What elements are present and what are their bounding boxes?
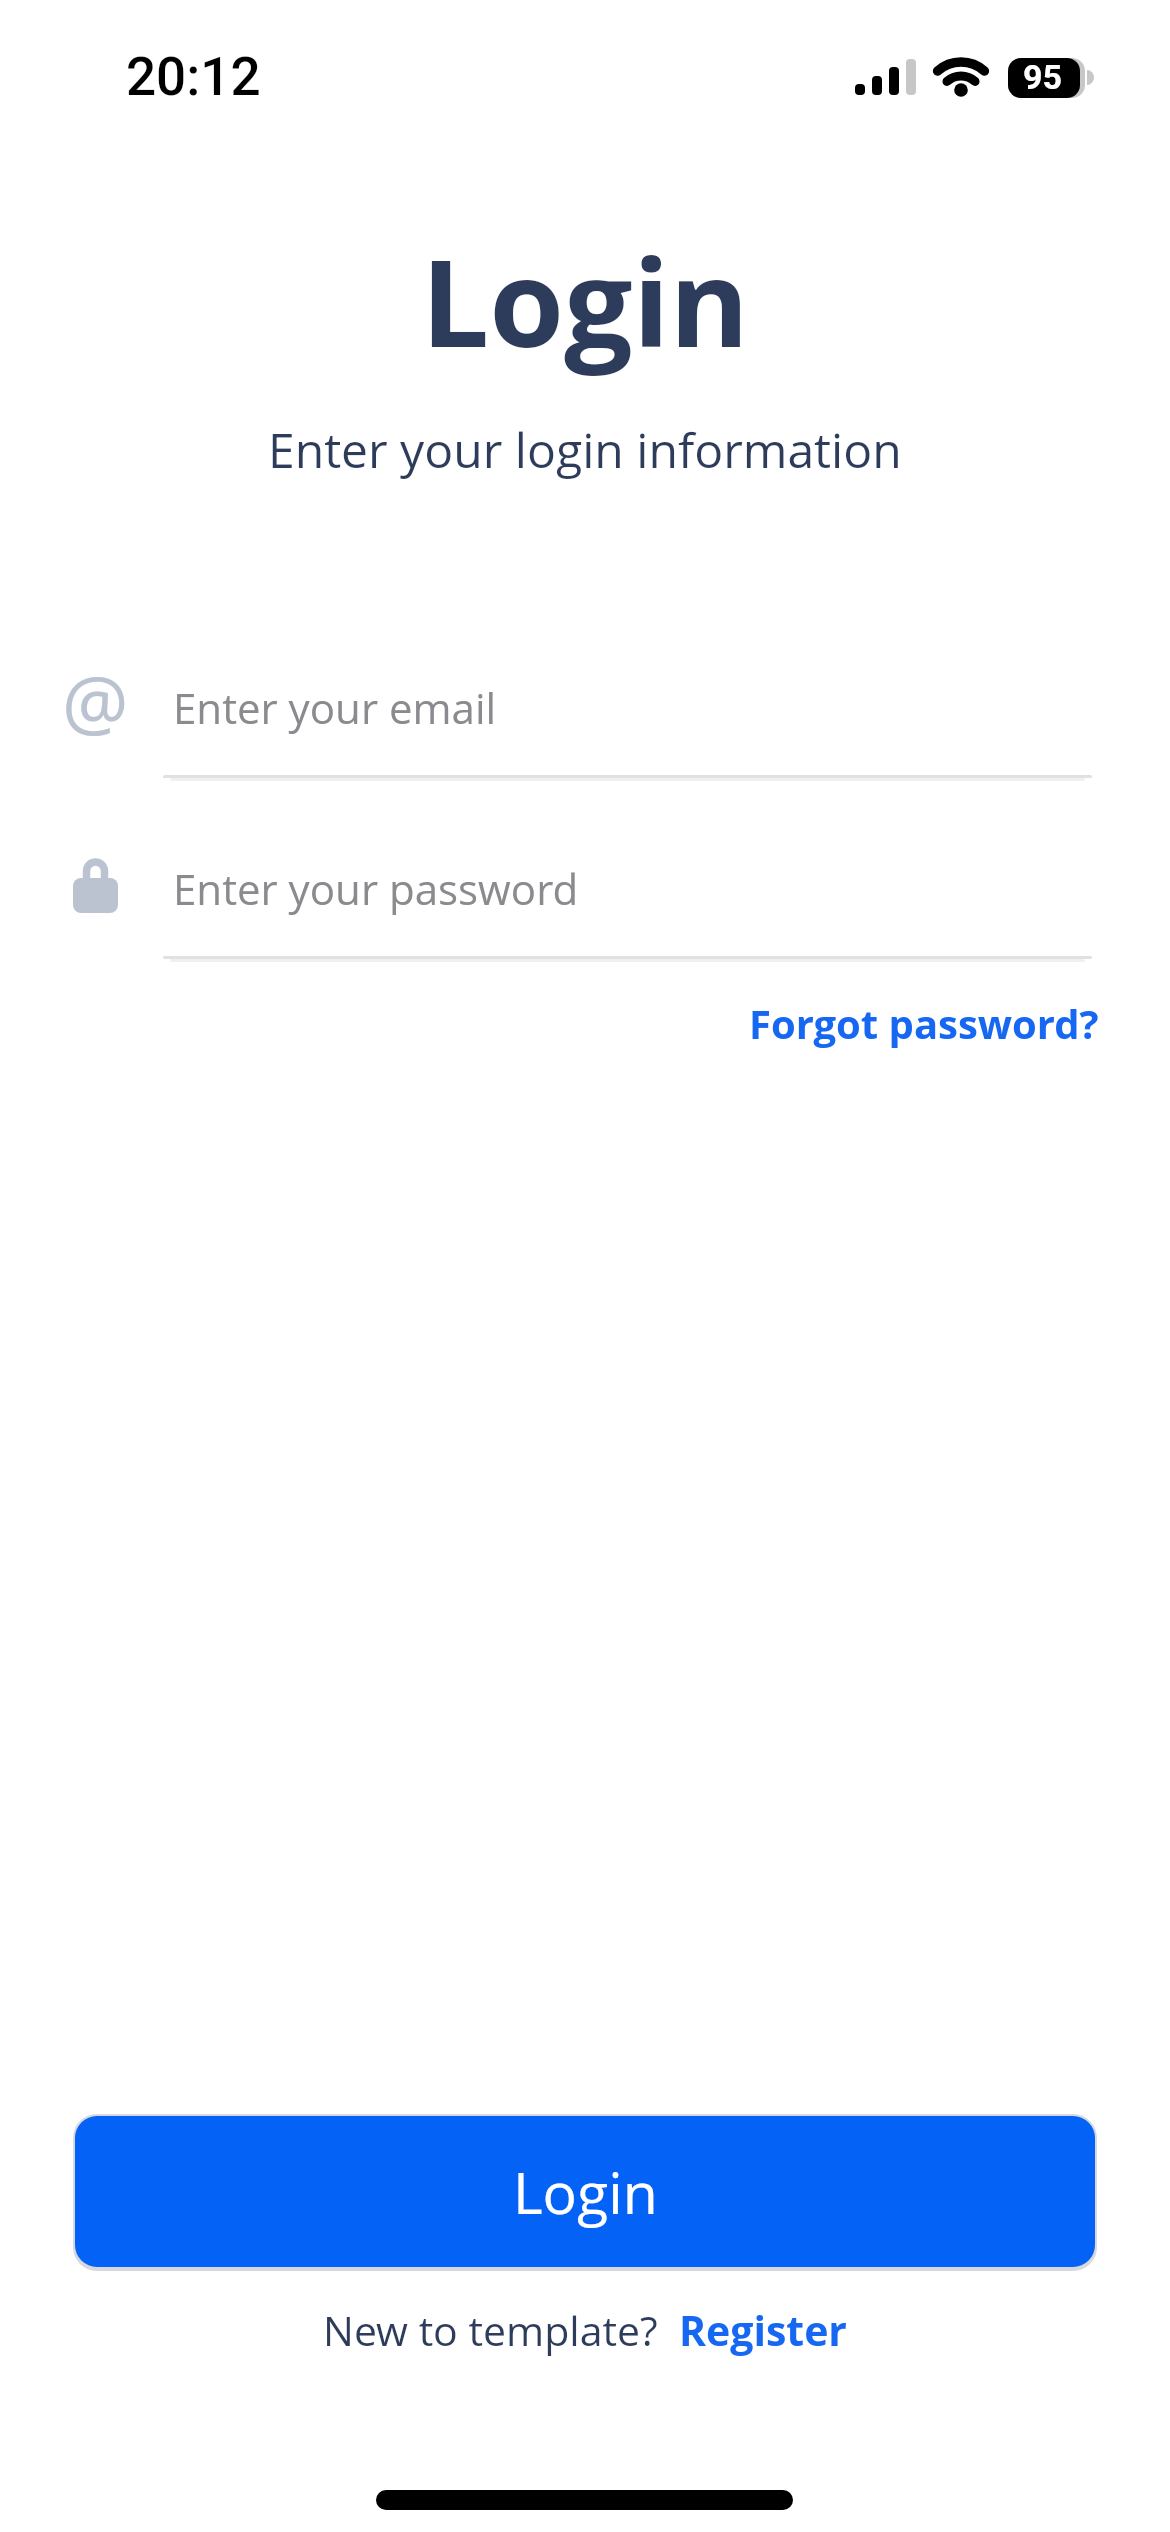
staticText: @ [62,650,129,751]
staticText: Forgot password? [749,996,1099,1050]
staticText: New to template? [323,2302,658,2358]
staticText: Enter your login information [268,417,902,482]
button[interactable]: Enter your password [60,830,1100,965]
staticText: Enter your password [173,860,579,917]
button[interactable]: Forgot password? [749,996,1099,1050]
staticText: Login [513,2153,658,2231]
staticText: Register [679,2302,847,2358]
staticText: Enter your email [173,679,497,736]
staticText: 20:12 [126,46,261,108]
button[interactable]: Login [75,2116,1095,2267]
staticText: Login [421,218,750,383]
button[interactable]: @ [60,650,1100,785]
button[interactable]: Register [679,2302,847,2358]
staticText: 95 [1023,57,1063,97]
